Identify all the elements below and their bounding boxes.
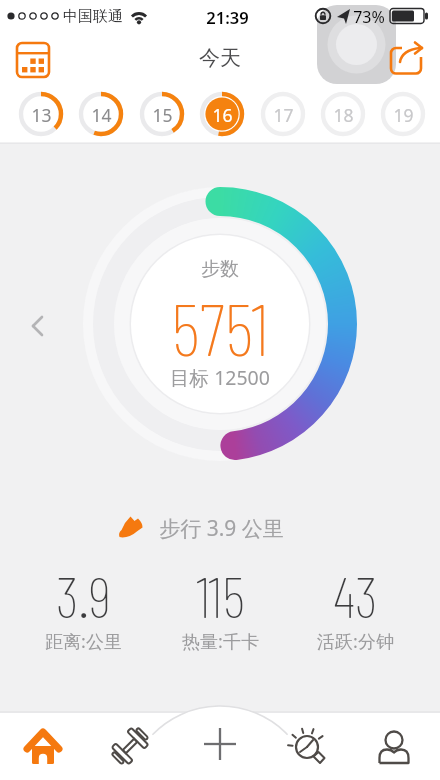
button[interactable]: 14	[74, 87, 128, 141]
staticText: 距离:公里	[45, 629, 122, 654]
staticText: 13	[31, 103, 52, 127]
staticText: 15	[152, 103, 173, 127]
staticText: 18	[333, 103, 354, 127]
staticText: 中国联通	[63, 7, 123, 26]
staticText: 17	[273, 103, 294, 127]
button[interactable]	[176, 710, 264, 780]
staticText: 热量:千卡	[182, 629, 259, 654]
button[interactable]	[20, 305, 54, 347]
button[interactable]	[366, 718, 422, 774]
staticText: 21:39	[206, 6, 249, 28]
button[interactable]: 18	[316, 87, 370, 141]
staticText: 今天	[199, 45, 241, 71]
staticText: 目标 12500	[170, 364, 270, 391]
button[interactable]	[386, 40, 430, 82]
staticText: 115	[196, 560, 245, 630]
staticText: 43	[333, 560, 378, 630]
staticText: 步数	[201, 257, 239, 281]
staticText: 步行 3.9 公里	[159, 514, 284, 543]
staticText: 19	[393, 103, 414, 127]
button[interactable]: 13	[14, 87, 68, 141]
button[interactable]	[10, 38, 56, 84]
button[interactable]	[102, 718, 158, 774]
staticText: 活跃:分钟	[317, 629, 394, 654]
staticText: 5751	[171, 283, 269, 371]
staticText: 14	[91, 103, 112, 127]
button[interactable]: 19	[376, 87, 430, 141]
button[interactable]	[15, 718, 71, 774]
button[interactable]	[280, 718, 336, 774]
button[interactable]: 17	[256, 87, 310, 141]
staticText: 73%	[353, 6, 385, 28]
button[interactable]: 16	[195, 87, 249, 141]
staticText: 3.9	[56, 560, 111, 630]
staticText: 16	[212, 103, 233, 127]
button[interactable]: 15	[135, 87, 189, 141]
